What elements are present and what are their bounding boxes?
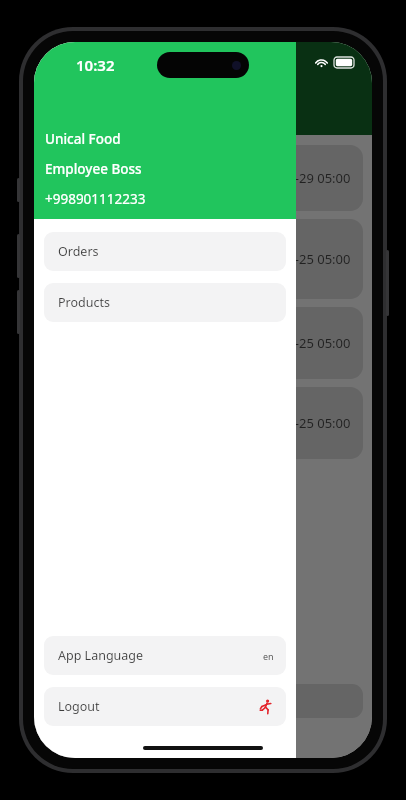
- button[interactable]: Products: [44, 283, 286, 322]
- staticText: +998901112233: [45, 190, 146, 208]
- staticText: Employee Boss: [45, 160, 142, 178]
- button[interactable]: 2024-01-25 05:00: [43, 307, 363, 379]
- staticText: Logout: [58, 698, 100, 715]
- button[interactable]: App Language: [44, 636, 286, 675]
- staticText: 2024-01-25 05:00: [246, 414, 351, 432]
- staticText: App Language: [58, 647, 144, 664]
- staticText: en: [263, 650, 274, 662]
- staticText: 2024-01-25 05:00: [246, 250, 351, 268]
- staticText: Products: [58, 294, 110, 311]
- button[interactable]: Logout: [44, 687, 286, 726]
- staticText: 10:32: [76, 55, 115, 75]
- staticText: Orders: [58, 243, 99, 260]
- button[interactable]: 2024-01-25 05:00: [43, 387, 363, 459]
- button[interactable]: Orders: [44, 232, 286, 271]
- button[interactable]: Next: [43, 684, 363, 718]
- staticText: Unical Food: [45, 130, 121, 148]
- staticText: 2024-01-25 05:00: [246, 334, 351, 352]
- button[interactable]: 2024-01-25 05:00: [43, 219, 363, 299]
- button[interactable]: 2024-01-29 05:00: [43, 145, 363, 211]
- other: Logout: [258, 699, 274, 715]
- staticText: 2024-01-29 05:00: [246, 169, 351, 187]
